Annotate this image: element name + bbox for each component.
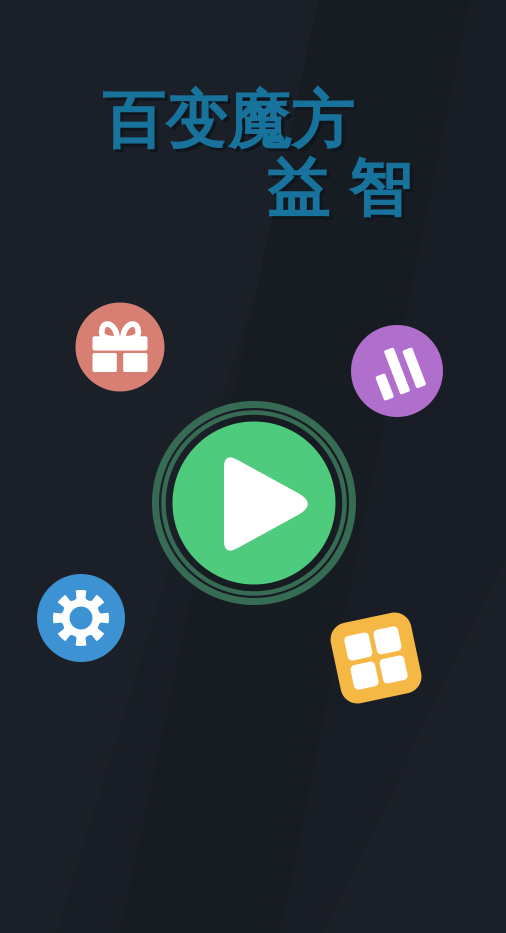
button[interactable]: Play (149, 398, 359, 608)
staticText: 百变魔方 (105, 85, 357, 162)
staticText: 益 智 (266, 150, 411, 227)
button[interactable]: Settings (37, 574, 125, 662)
button[interactable]: Levels (335, 617, 417, 699)
staticText: 益 智 (269, 153, 414, 230)
staticText: 百变魔方 (102, 82, 354, 159)
button[interactable]: Leaderboard (351, 325, 443, 417)
button[interactable]: Gifts (75, 302, 164, 391)
